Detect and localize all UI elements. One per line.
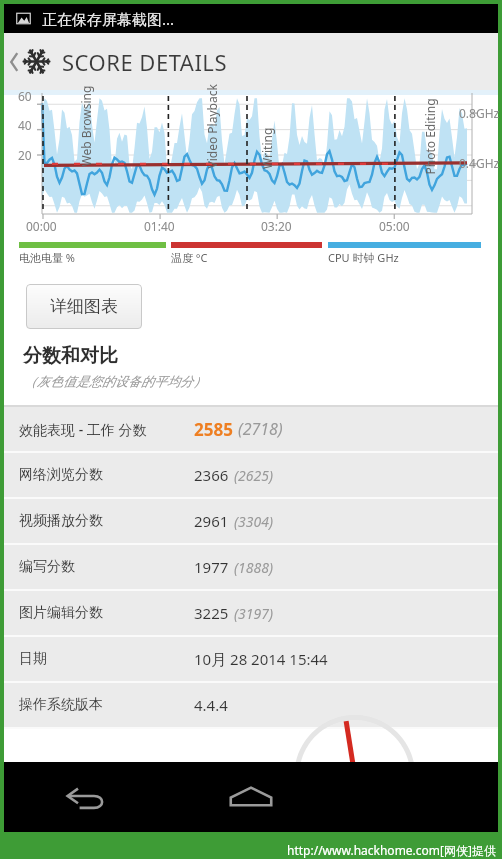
staticText: 40	[18, 117, 32, 133]
staticText: CPU 时钟 GHz	[328, 250, 399, 265]
staticText: 05:00	[379, 218, 410, 234]
staticText: (3197)	[234, 604, 273, 623]
staticText: (3304)	[234, 512, 273, 531]
staticText: 01:40	[144, 218, 175, 234]
staticText: 2366	[194, 465, 229, 485]
staticText: Photo Editing	[421, 97, 437, 174]
staticText: 2585	[194, 418, 233, 441]
staticText: 正在保存屏幕截图...	[42, 9, 175, 29]
button[interactable]: Home	[168, 762, 333, 832]
staticText: http://www.hackhome.com[网侠]提供	[287, 842, 496, 858]
staticText: 日期	[19, 650, 47, 668]
button[interactable]: 详细图表	[26, 284, 142, 329]
staticText: (2718)	[238, 418, 283, 440]
staticText: 视频播放分数	[19, 512, 103, 530]
staticText: 操作系统版本	[19, 696, 103, 714]
staticText: 网络浏览分数	[19, 466, 103, 484]
staticText: (1888)	[234, 558, 273, 577]
staticText: 编写分数	[19, 558, 75, 576]
staticText: 60	[18, 88, 32, 104]
button[interactable]: Back	[4, 38, 53, 85]
button[interactable]: 视频播放分数	[4, 499, 498, 543]
staticText: 4.4.4	[194, 695, 228, 715]
button[interactable]: 操作系统版本	[4, 683, 498, 727]
staticText: 图片编辑分数	[19, 604, 103, 622]
staticText: 分数和对比	[23, 344, 118, 368]
staticText: 3225	[194, 603, 229, 623]
staticText: 电池电量 %	[19, 250, 76, 265]
staticText: Writing	[259, 127, 275, 169]
staticText: 03:20	[261, 218, 292, 234]
staticText: 0.8GHz	[459, 105, 500, 121]
button[interactable]: 效能表现 - 工作 分数	[4, 407, 498, 451]
staticText: SCORE DETAILS	[62, 47, 227, 77]
staticText: (2625)	[234, 466, 273, 485]
staticText: 10月 28 2014 15:44	[194, 649, 328, 669]
staticText: 详细图表	[50, 296, 118, 317]
button[interactable]: Back	[4, 762, 168, 832]
staticText: Video Playback	[203, 83, 219, 168]
staticText: （灰色值是您的设备的平均分）	[24, 373, 206, 389]
staticText: 效能表现 - 工作 分数	[19, 420, 147, 439]
button[interactable]: 编写分数	[4, 545, 498, 589]
staticText: 1977	[194, 557, 229, 577]
staticText: 00:00	[26, 218, 57, 234]
staticText: 2961	[194, 511, 229, 531]
staticText: Web Browsing	[77, 85, 93, 166]
button[interactable]: 图片编辑分数	[4, 591, 498, 635]
staticText: 20	[18, 147, 32, 163]
staticText: 0.4GHz	[459, 155, 500, 171]
button[interactable]: 网络浏览分数	[4, 453, 498, 497]
button[interactable]: 日期	[4, 637, 498, 681]
staticText: 温度 °C	[171, 250, 208, 265]
